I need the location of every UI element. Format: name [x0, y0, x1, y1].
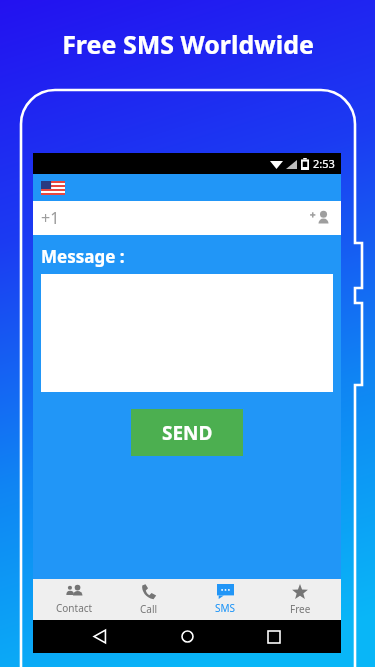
- staticText: Message :: [41, 245, 125, 268]
- staticText: Free: [290, 602, 311, 616]
- button[interactable]: Free: [265, 579, 335, 620]
- staticText: 2:53: [313, 156, 335, 171]
- staticText: Contact: [56, 601, 93, 615]
- button[interactable]: [33, 174, 341, 201]
- button[interactable]: Contact: [39, 579, 109, 620]
- button[interactable]: +1: [33, 201, 341, 235]
- button[interactable]: Call: [114, 579, 184, 620]
- button[interactable]: Recents: [254, 620, 294, 653]
- button[interactable]: Back: [80, 620, 120, 653]
- staticText: +1: [41, 207, 60, 229]
- staticText: SMS: [215, 601, 236, 615]
- button[interactable]: SEND: [131, 409, 243, 456]
- button[interactable]: Add contact: [307, 205, 333, 231]
- staticText: Free SMS Worldwide: [62, 27, 314, 61]
- button[interactable]: Home: [167, 620, 207, 653]
- button[interactable]: SMS: [190, 579, 260, 620]
- staticText: SEND: [162, 420, 213, 446]
- staticText: Call: [140, 602, 158, 616]
